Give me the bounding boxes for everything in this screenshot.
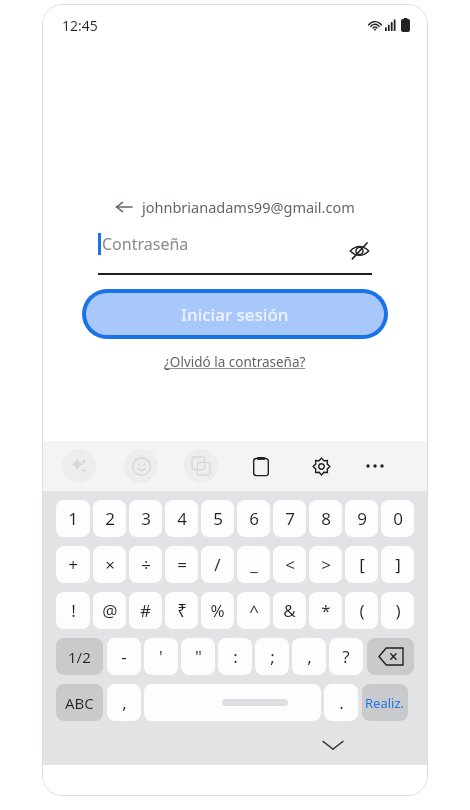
staticText: , [122,691,127,714]
button[interactable]: " [181,638,215,675]
button[interactable]: 7 [273,500,306,537]
button[interactable]: ₹ [165,592,198,629]
button[interactable]: < [273,546,306,583]
staticText: 2 [105,507,115,530]
button[interactable]: Herramienta de teclado [184,449,218,483]
staticText: 9 [357,507,367,530]
button[interactable]: . [324,684,358,721]
button[interactable]: ¿Olvidó la contraseña? [160,349,310,375]
other: Back [115,198,133,216]
button[interactable]: 6 [237,500,270,537]
button[interactable]: 1/2 [56,638,103,675]
staticText: 4 [177,507,187,530]
button[interactable]: × [93,546,126,583]
staticText: " [195,645,202,668]
button[interactable]: - [107,638,141,675]
staticText: - [121,645,127,668]
button[interactable]: 2 [93,500,126,537]
staticText: ABC [65,693,94,713]
staticText: Realiz. [365,694,405,712]
button[interactable]: / [201,546,234,583]
button[interactable]: : [218,638,252,675]
button[interactable]: ! [56,592,90,629]
staticText: # [140,599,151,622]
staticText: 1/2 [68,647,91,667]
button[interactable]: Herramienta de teclado [304,449,338,483]
button[interactable]: 3 [129,500,162,537]
button[interactable]: # [129,592,162,629]
staticText: 8 [321,507,331,530]
staticText: ( [359,599,365,622]
button[interactable]: , [107,684,141,721]
staticText: > [321,553,331,576]
button[interactable]: + [56,546,90,583]
button[interactable]: Realiz. [362,684,408,721]
staticText: _ [250,553,258,576]
staticText: . [339,691,344,714]
button[interactable]: ' [144,638,178,675]
button[interactable]: Espacio [144,684,321,721]
button[interactable]: ( [345,592,378,629]
staticText: 7 [285,507,295,530]
staticText: 0 [393,507,403,530]
button[interactable]: = [165,546,198,583]
staticText: ' [159,645,163,668]
staticText: = [177,553,187,576]
staticText: : [233,645,238,668]
staticText: ; [270,645,275,668]
button[interactable]: 5 [201,500,234,537]
button[interactable]: 0 [381,500,414,537]
button[interactable]: Iniciar sesión [86,293,384,335]
button[interactable]: Mostrar contraseña [346,237,372,263]
button[interactable]: 8 [309,500,342,537]
button[interactable]: [ [345,546,378,583]
staticText: Iniciar sesión [181,303,289,326]
button[interactable]: Herramienta de teclado [124,449,158,483]
staticText: 6 [249,507,259,530]
button[interactable]: ; [255,638,289,675]
button[interactable]: Herramienta de teclado [244,449,278,483]
staticText: 3 [141,507,151,530]
button[interactable]: & [273,592,306,629]
staticText: ^ [249,599,259,622]
staticText: ) [395,599,401,622]
button[interactable]: 4 [165,500,198,537]
staticText: < [285,553,295,576]
staticText: [ [359,553,365,576]
button[interactable]: Retroceso [367,638,414,675]
staticText: ! [71,599,76,622]
button[interactable]: * [309,592,342,629]
button[interactable]: % [201,592,234,629]
button[interactable]: Ocultar teclado [316,728,350,762]
button[interactable]: _ [237,546,270,583]
staticText: & [283,599,296,622]
button[interactable]: , [292,638,326,675]
button[interactable]: ÷ [129,546,162,583]
button[interactable]: ^ [237,592,270,629]
staticText: @ [102,599,118,622]
staticText: + [68,553,78,576]
staticText: ] [395,553,401,576]
button[interactable]: ABC [56,684,103,721]
button[interactable]: > [309,546,342,583]
staticText: 12:45 [62,16,98,35]
button[interactable]: ] [381,546,414,583]
staticText: ÷ [141,553,151,576]
staticText: * [321,599,331,622]
button[interactable]: Contraseña [98,233,372,275]
staticText: ₹ [177,599,187,622]
button[interactable]: Herramienta de teclado [62,449,96,483]
button[interactable]: 1 [56,500,90,537]
staticText: 5 [213,507,223,530]
button[interactable]: ? [329,638,363,675]
button[interactable]: @ [93,592,126,629]
staticText: / [214,553,221,576]
button[interactable]: ) [381,592,414,629]
staticText: johnbrianadams99@gmail.com [142,197,355,217]
staticText: , [307,645,312,668]
staticText: % [210,599,225,622]
button[interactable]: Back [102,197,368,217]
button[interactable]: Más opciones [358,449,392,483]
button[interactable]: 9 [345,500,378,537]
staticText: ? [342,645,350,668]
